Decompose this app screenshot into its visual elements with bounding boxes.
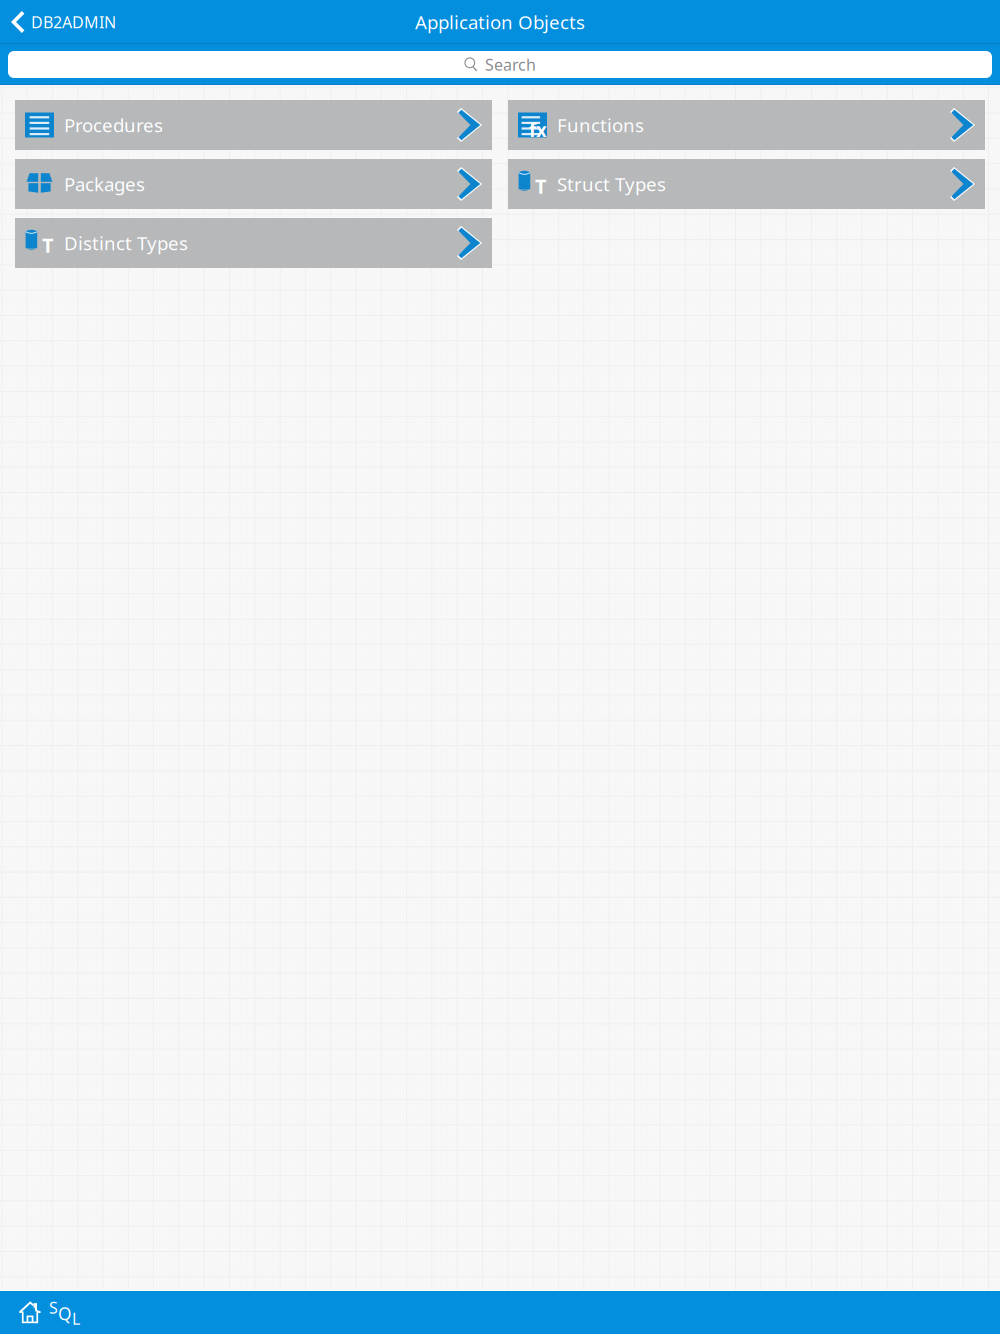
button[interactable]: Procedures xyxy=(15,100,492,150)
button[interactable]: T xyxy=(508,159,985,209)
button[interactable]: fx xyxy=(508,100,985,150)
staticText: Q xyxy=(58,1302,72,1325)
button[interactable]: DB2ADMIN xyxy=(0,0,128,44)
staticText: Distinct Types xyxy=(64,231,188,255)
staticText: Packages xyxy=(64,172,145,196)
staticText: Search xyxy=(485,54,536,75)
staticText: T xyxy=(535,173,547,199)
staticText: Procedures xyxy=(64,113,163,137)
staticText: Struct Types xyxy=(557,172,666,196)
staticText: T xyxy=(42,232,54,258)
staticText: Functions xyxy=(557,113,644,137)
button[interactable]: Home xyxy=(0,1290,49,1334)
button[interactable]: Packages xyxy=(15,159,492,209)
staticText: L xyxy=(72,1308,80,1329)
staticText: fx xyxy=(529,118,547,142)
staticText: S xyxy=(49,1297,58,1318)
button[interactable]: T xyxy=(15,218,492,268)
staticText: Application Objects xyxy=(415,10,585,34)
button[interactable]: SQL xyxy=(49,1290,79,1334)
staticText: DB2ADMIN xyxy=(31,11,116,33)
button[interactable]: Search xyxy=(0,51,1000,78)
